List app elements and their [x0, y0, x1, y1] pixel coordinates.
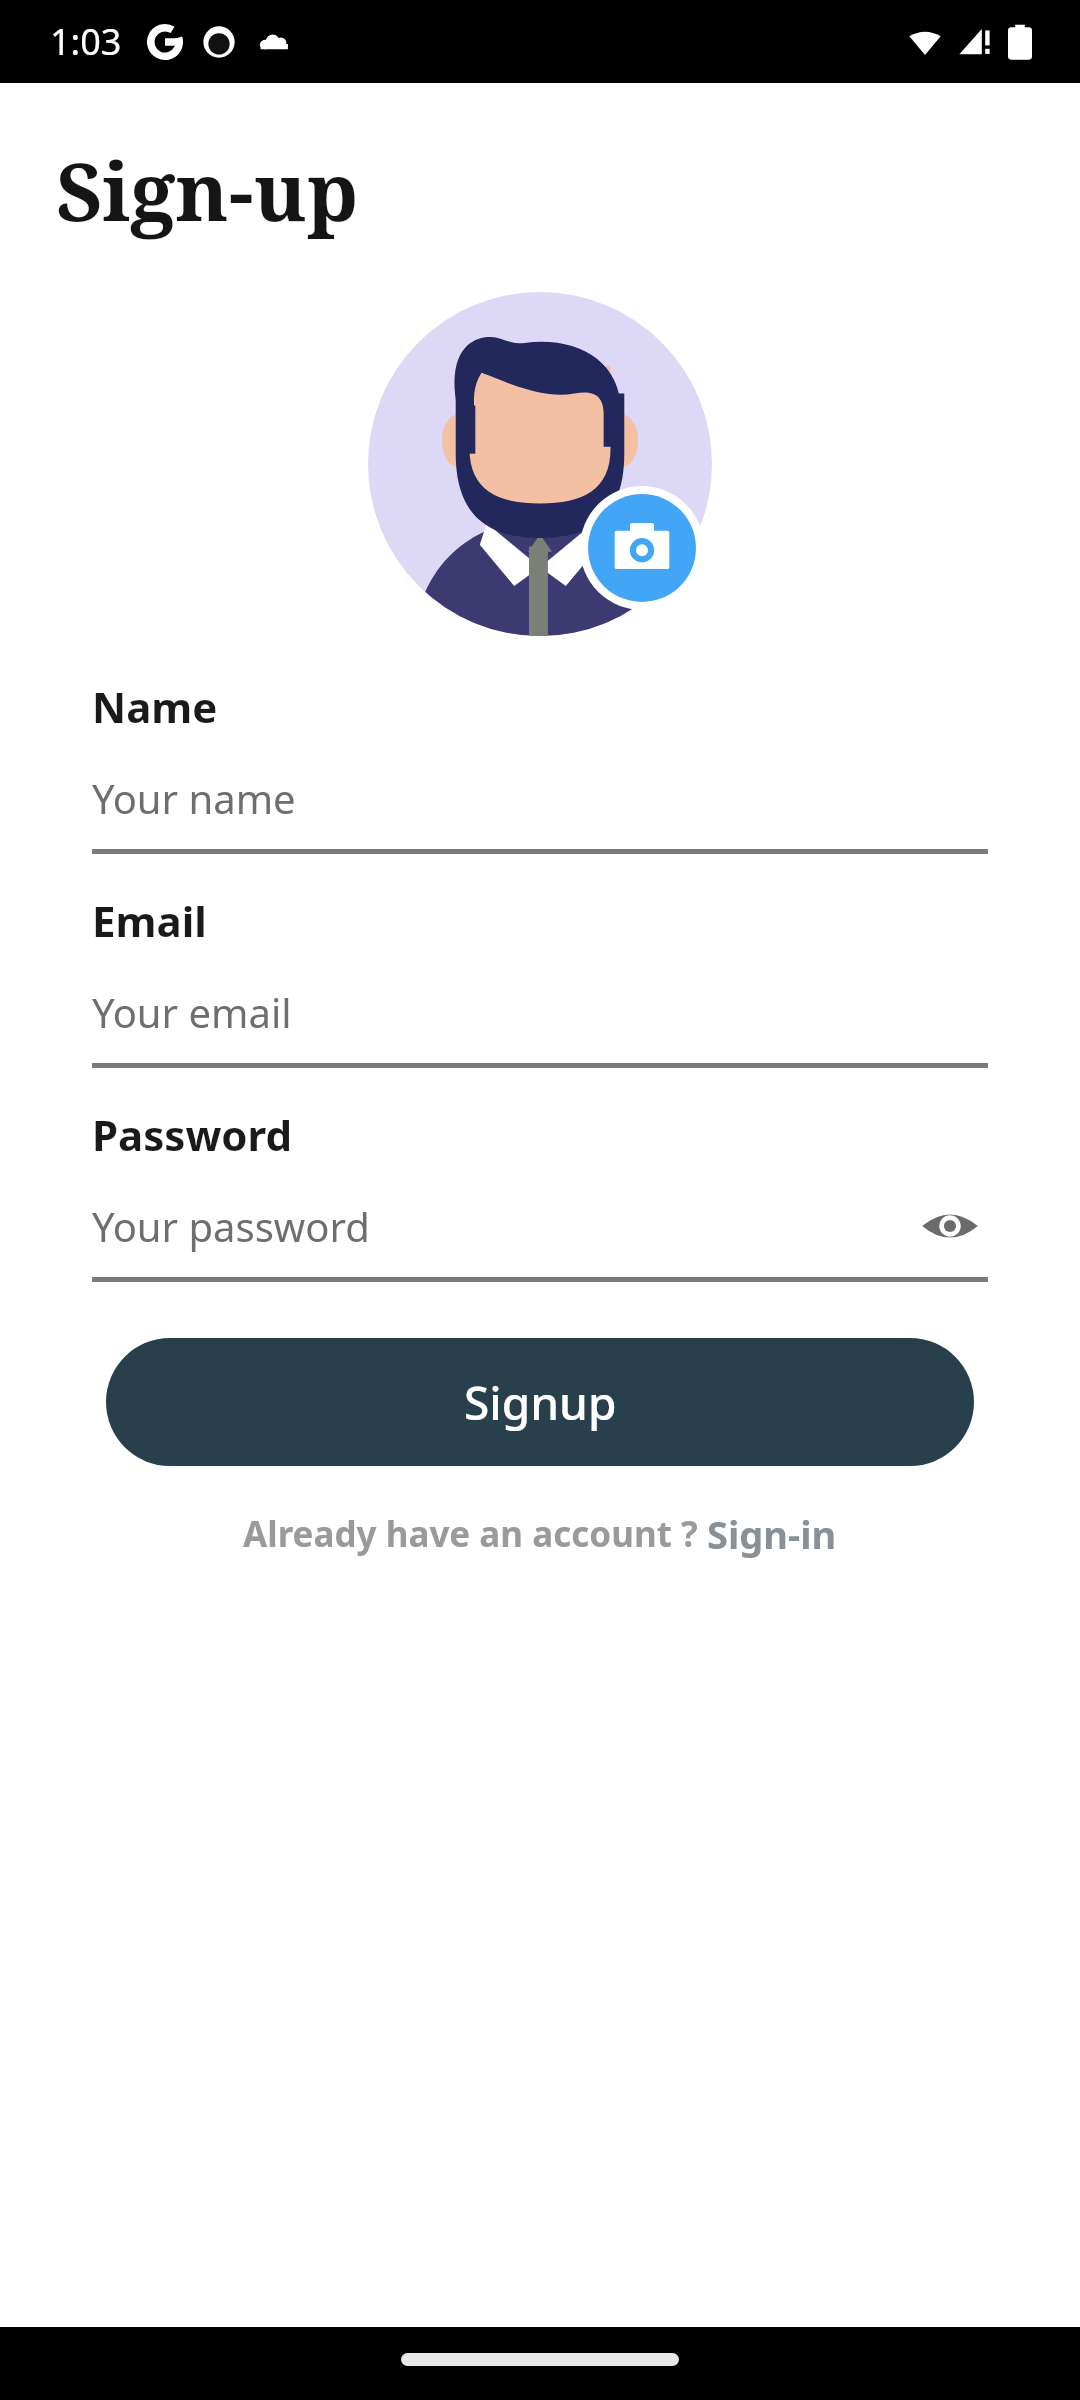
button[interactable]: Signup — [106, 1338, 974, 1466]
button[interactable]: Your password — [92, 1197, 988, 1255]
staticText: Name — [92, 678, 218, 735]
staticText: Sign-in — [707, 1508, 837, 1560]
staticText: Signup — [464, 1371, 617, 1434]
button[interactable]: Change profile photo — [368, 292, 712, 636]
staticText: Your email — [92, 985, 292, 1039]
staticText: Your name — [92, 771, 296, 825]
staticText: Your password — [92, 1199, 370, 1253]
button[interactable]: Your name — [92, 769, 988, 827]
staticText: Already have an account ? — [243, 1510, 707, 1558]
button[interactable]: Already have an account ? — [243, 1508, 837, 1560]
button[interactable]: Show password — [912, 1197, 988, 1255]
staticText: Password — [92, 1106, 293, 1163]
button[interactable]: Your email — [92, 983, 988, 1041]
staticText: 1:03 — [50, 17, 122, 66]
staticText: Email — [92, 892, 207, 949]
staticText: Sign-up — [56, 135, 359, 244]
